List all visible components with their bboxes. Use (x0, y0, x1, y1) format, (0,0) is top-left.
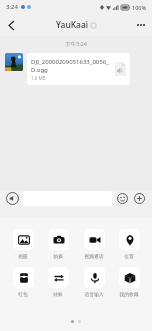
staticText: 位置 (114, 253, 144, 259)
staticText: 相册 (8, 253, 38, 259)
staticText: DJI_20000209051633_0056_D.ogg (31, 58, 112, 73)
button[interactable]: Back (0, 14, 22, 36)
button[interactable]: DJI_20000209051633_0056_D.ogg (27, 53, 130, 85)
button[interactable]: 相册 (8, 229, 38, 259)
staticText: 下午3:24 (65, 40, 87, 48)
staticText: 3:24 (6, 3, 18, 11)
staticText: 语音输入 (79, 291, 109, 297)
button[interactable]: 红包 (8, 267, 38, 297)
button[interactable]: Voice input (5, 191, 20, 206)
staticText: 转账 (43, 291, 73, 297)
staticText: 红包 (8, 291, 38, 297)
button[interactable]: 转账 (43, 267, 73, 297)
button[interactable]: More options (130, 14, 152, 36)
button[interactable]: More functions (132, 191, 147, 206)
button[interactable]: 我的收藏 (114, 267, 144, 297)
button[interactable]: 视频通话 (79, 229, 109, 259)
button[interactable]: Emoji (115, 191, 130, 206)
button[interactable]: Avatar (5, 53, 23, 71)
staticText: 拍摄 (43, 253, 73, 259)
staticText: 1.6 MB (31, 75, 46, 81)
staticText: 100% (132, 4, 147, 11)
button[interactable]: 语音输入 (79, 267, 109, 297)
staticText: 我的收藏 (114, 291, 144, 297)
staticText: YauKaai (56, 19, 89, 31)
staticText: 视频通话 (79, 253, 109, 259)
button[interactable]: 拍摄 (43, 229, 73, 259)
button[interactable]: 位置 (114, 229, 144, 259)
